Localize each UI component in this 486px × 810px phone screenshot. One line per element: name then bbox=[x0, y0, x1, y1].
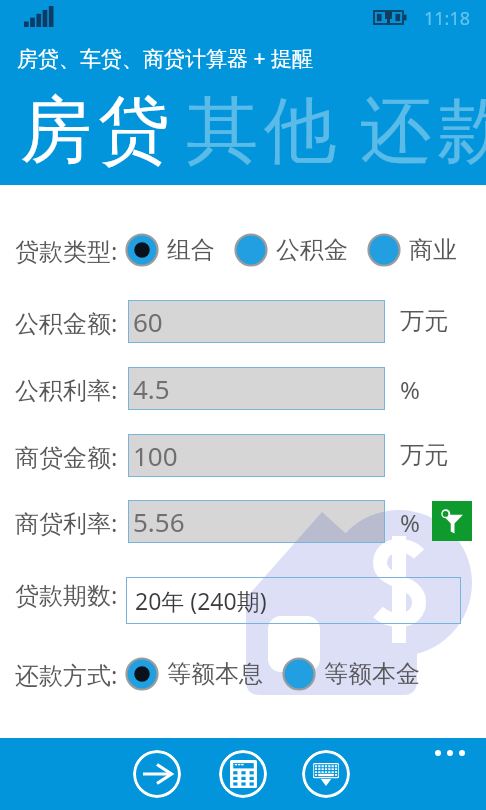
button[interactable]: Filter bbox=[432, 501, 472, 541]
button[interactable]: 60 bbox=[128, 300, 385, 343]
staticText: 20年 (240期) bbox=[135, 585, 267, 616]
staticText: 商业 bbox=[409, 235, 457, 265]
button[interactable]: 公积金 bbox=[234, 233, 348, 267]
button[interactable]: 5.56 bbox=[128, 500, 385, 543]
staticText: 还款方式: bbox=[15, 658, 118, 691]
button[interactable]: 等额本息 bbox=[125, 657, 263, 691]
staticText: 贷款期数: bbox=[15, 578, 118, 611]
staticText: 60 bbox=[133, 304, 163, 339]
button[interactable]: More options bbox=[433, 748, 467, 758]
staticText: 万元 bbox=[400, 306, 448, 336]
button[interactable]: 商业 bbox=[367, 233, 457, 267]
staticText: 其他 bbox=[183, 86, 339, 177]
staticText: 公积金 bbox=[276, 235, 348, 265]
button[interactable]: 20年 (240期) bbox=[126, 577, 461, 624]
staticText: 100 bbox=[133, 438, 178, 473]
button[interactable]: Next bbox=[133, 750, 181, 798]
staticText: 贷款类型: bbox=[15, 234, 118, 267]
staticText: 等额本金 bbox=[324, 659, 420, 689]
staticText: 5.56 bbox=[133, 504, 185, 539]
staticText: 公积金额: bbox=[15, 306, 118, 339]
button[interactable]: 4.5 bbox=[128, 367, 385, 410]
button[interactable]: Calculator bbox=[219, 750, 267, 798]
button[interactable]: 100 bbox=[128, 434, 385, 477]
staticText: 11:18 bbox=[424, 6, 471, 31]
staticText: 商贷金额: bbox=[15, 440, 118, 473]
staticText: 万元 bbox=[400, 440, 448, 470]
button[interactable]: Keyboard bbox=[302, 750, 350, 798]
staticText: 等额本息 bbox=[167, 659, 263, 689]
staticText: 公积利率: bbox=[15, 373, 118, 406]
button[interactable]: 组合 bbox=[125, 233, 215, 267]
staticText: 房贷 bbox=[17, 86, 173, 177]
button[interactable]: 等额本金 bbox=[282, 657, 420, 691]
staticText: 4.5 bbox=[133, 371, 170, 406]
staticText: 组合 bbox=[167, 235, 215, 265]
staticText: 房贷、车贷、商贷计算器 + 提醒 bbox=[17, 44, 313, 73]
staticText: 还款 bbox=[357, 86, 486, 177]
staticText: 商贷利率: bbox=[15, 506, 118, 539]
staticText: % bbox=[400, 506, 420, 539]
staticText: % bbox=[400, 373, 420, 406]
